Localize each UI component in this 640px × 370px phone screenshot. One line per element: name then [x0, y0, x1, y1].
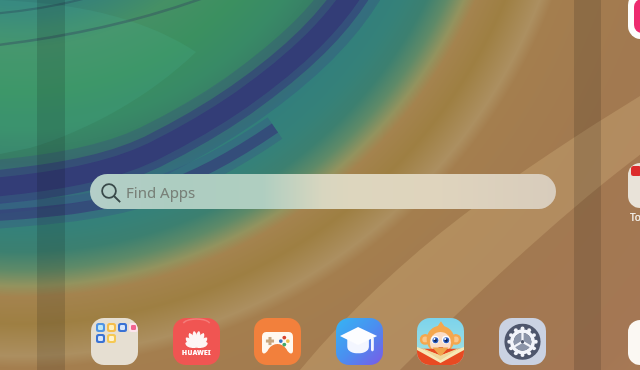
button[interactable]: Tools folder — [628, 163, 640, 208]
button[interactable]: App — [628, 0, 640, 39]
staticText: Find Apps — [126, 182, 196, 202]
button[interactable]: App — [628, 320, 640, 365]
button[interactable]: Tips — [336, 318, 383, 365]
button[interactable]: AppGallery — [173, 318, 220, 365]
button[interactable]: Game Center — [254, 318, 301, 365]
button[interactable]: Kids Corner — [417, 318, 464, 365]
staticText: HUAWEI — [182, 348, 211, 357]
button[interactable]: Folder — [91, 318, 138, 365]
button[interactable]: Find Apps — [90, 174, 556, 209]
button[interactable]: Settings — [499, 318, 546, 365]
staticText: To — [630, 210, 640, 224]
